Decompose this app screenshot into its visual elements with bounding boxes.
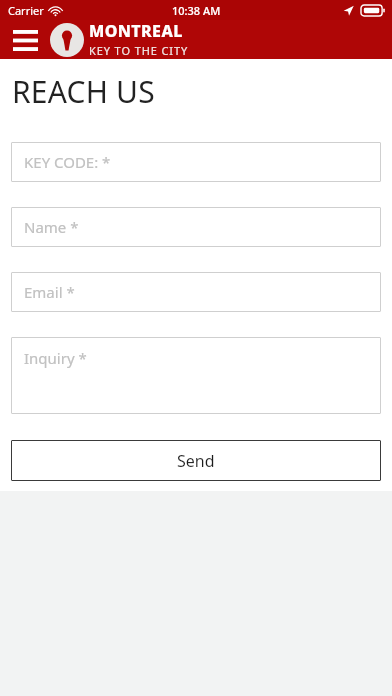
staticText: Inquiry * bbox=[24, 348, 87, 368]
button[interactable]: KEY CODE: * bbox=[11, 142, 381, 182]
staticText: KEY TO THE CITY bbox=[89, 43, 189, 58]
staticText: KEY CODE: * bbox=[24, 152, 111, 172]
staticText: Name * bbox=[24, 217, 79, 237]
button[interactable]: Menu bbox=[8, 25, 42, 55]
staticText: MONTREAL bbox=[89, 20, 183, 42]
staticText: Carrier bbox=[8, 3, 44, 18]
staticText: Email * bbox=[24, 282, 75, 302]
button[interactable]: Email * bbox=[11, 272, 381, 312]
staticText: Send bbox=[177, 450, 215, 472]
button[interactable]: Inquiry * bbox=[11, 337, 381, 414]
button[interactable]: Send bbox=[11, 440, 381, 481]
button[interactable]: Name * bbox=[11, 207, 381, 247]
staticText: 10:38 AM bbox=[172, 3, 221, 18]
staticText: REACH US bbox=[12, 71, 155, 112]
button[interactable]: MONTREAL bbox=[50, 20, 189, 59]
